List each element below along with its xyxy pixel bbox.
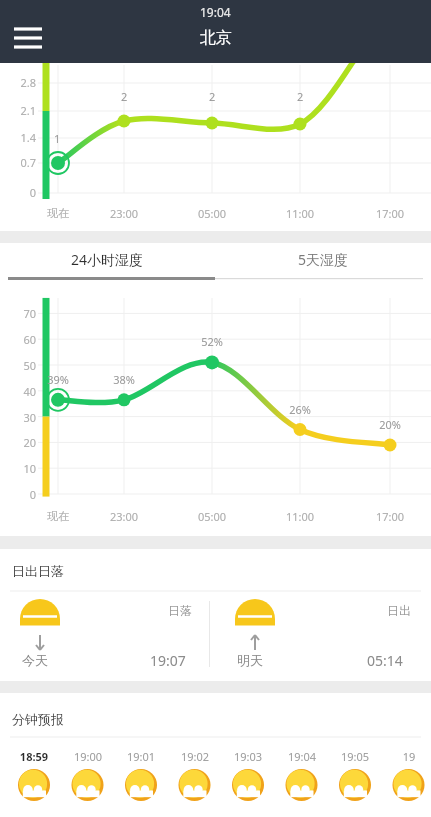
staticText: 2 (297, 89, 304, 104)
staticText: 40 (8, 384, 36, 399)
staticText: 1.4 (8, 130, 36, 145)
staticText: 日落 (168, 603, 192, 618)
staticText: 18:59 (8, 749, 60, 764)
button[interactable]: 19:03 (222, 749, 274, 807)
button[interactable]: 5天湿度 (215, 243, 431, 281)
staticText: 26% (274, 402, 326, 417)
staticText: 0 (8, 185, 36, 200)
staticText: 19:00 (62, 749, 114, 764)
button[interactable]: 19:00 (62, 749, 114, 807)
staticText: 20% (364, 417, 416, 432)
staticText: 19:01 (115, 749, 167, 764)
staticText: 现在 (28, 509, 88, 523)
staticText: 17:00 (360, 509, 420, 524)
button[interactable]: 18:59 (8, 749, 60, 807)
button[interactable]: 日出 (215, 549, 431, 681)
staticText: 30 (8, 410, 36, 425)
button[interactable]: 24小时湿度 (0, 243, 215, 281)
staticText: 60 (8, 332, 36, 347)
staticText: 05:00 (182, 206, 242, 221)
staticText: 2 (121, 89, 128, 104)
staticText: 北京 (200, 28, 232, 48)
staticText: 19 (383, 749, 431, 764)
staticText: 11:00 (270, 509, 330, 524)
staticText: 05:00 (182, 509, 242, 524)
staticText: 2 (209, 89, 216, 104)
button[interactable]: Menu (0, 12, 52, 64)
staticText: 19:03 (222, 749, 274, 764)
button[interactable]: 19:02 (169, 749, 221, 807)
staticText: 0 (8, 487, 36, 502)
staticText: 19:04 (276, 749, 328, 764)
staticText: 明天 (237, 652, 263, 668)
staticText: 39% (32, 372, 84, 387)
staticText: 24小时湿度 (71, 250, 144, 269)
staticText: 52% (186, 334, 238, 349)
staticText: 11:00 (270, 206, 330, 221)
staticText: 今天 (22, 652, 48, 668)
staticText: 19:07 (150, 651, 186, 670)
staticText: 现在 (28, 206, 88, 220)
staticText: 50 (8, 358, 36, 373)
staticText: 19:02 (169, 749, 221, 764)
staticText: 38% (98, 372, 150, 387)
staticText: 分钟预报 (12, 711, 64, 727)
button[interactable]: 19 (383, 749, 431, 807)
staticText: 23:00 (94, 509, 154, 524)
staticText: 19:05 (329, 749, 381, 764)
staticText: 23:00 (94, 206, 154, 221)
staticText: 日出日落 (12, 563, 64, 579)
staticText: 5天湿度 (298, 250, 349, 269)
button[interactable]: 19:05 (329, 749, 381, 807)
staticText: 05:14 (367, 651, 403, 670)
staticText: 日出 (387, 603, 411, 618)
staticText: 19:04 (200, 4, 231, 20)
staticText: 0.7 (8, 155, 36, 170)
staticText: 1 (54, 131, 61, 146)
staticText: 70 (8, 306, 36, 321)
staticText: 2.1 (8, 103, 36, 118)
staticText: 10 (8, 461, 36, 476)
button[interactable]: 19:01 (115, 749, 167, 807)
staticText: 2.8 (8, 75, 36, 90)
staticText: 17:00 (360, 206, 420, 221)
staticText: 20 (8, 435, 36, 450)
button[interactable]: 19:04 (276, 749, 328, 807)
button[interactable]: 日落 (0, 549, 215, 681)
